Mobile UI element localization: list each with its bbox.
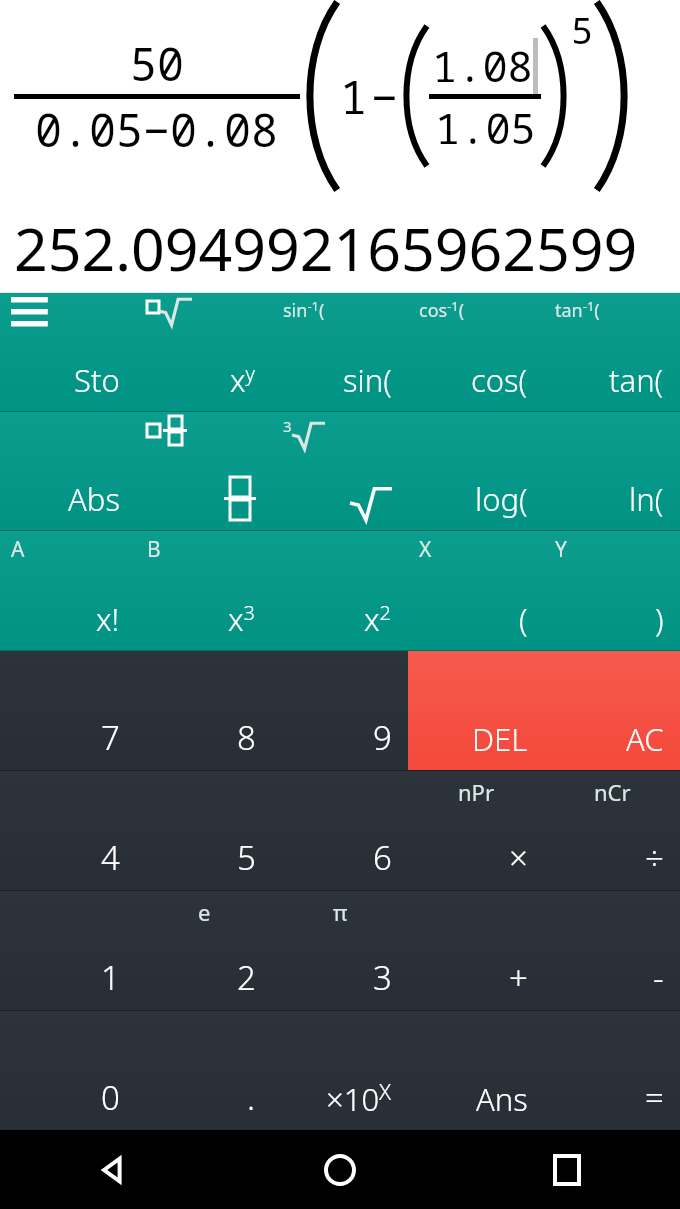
button[interactable]: Menu <box>0 293 136 411</box>
staticText: nPr <box>458 777 494 807</box>
button[interactable]: B <box>136 531 272 650</box>
staticText: A <box>11 535 25 564</box>
staticText: B <box>147 535 161 564</box>
button[interactable]: e <box>136 891 272 1010</box>
button[interactable]: cos-1( <box>408 293 544 411</box>
button[interactable]: 1 <box>0 891 136 1010</box>
staticText: X <box>419 535 432 564</box>
button[interactable]: Home <box>226 1130 453 1209</box>
button[interactable]: AC <box>544 651 680 770</box>
staticText: ln( <box>629 478 664 520</box>
button[interactable]: Ans <box>408 1011 544 1130</box>
staticText: ( <box>519 598 528 640</box>
staticText: 4 <box>101 835 120 880</box>
staticText: 1 <box>101 955 120 1000</box>
button[interactable]: π <box>272 891 408 1010</box>
button[interactable]: = <box>544 1011 680 1130</box>
staticText: 0 <box>101 1075 120 1120</box>
button[interactable]: A <box>0 531 136 650</box>
button[interactable]: X <box>408 531 544 650</box>
button[interactable]: ln( <box>544 412 680 530</box>
staticText: × <box>509 835 528 880</box>
staticText: Abs <box>68 478 120 520</box>
staticText: 7 <box>101 715 120 760</box>
staticText: 1.05 <box>435 99 536 156</box>
staticText: . <box>247 1075 256 1120</box>
button[interactable]: 7 <box>0 651 136 770</box>
button[interactable]: Square root <box>272 412 408 530</box>
staticText: 1.08 <box>432 37 533 94</box>
button[interactable]: . <box>136 1011 272 1130</box>
staticText: sin( <box>343 359 392 401</box>
button[interactable]: 5 <box>136 771 272 890</box>
button[interactable]: - <box>544 891 680 1010</box>
button[interactable]: tan-1( <box>544 293 680 411</box>
staticText: DEL <box>472 718 528 760</box>
staticText: Sto <box>74 359 120 401</box>
staticText: e <box>198 897 211 927</box>
staticText: cos( <box>471 359 528 401</box>
button[interactable]: 8 <box>136 651 272 770</box>
staticText: 6 <box>373 835 392 880</box>
staticText: 252.094992165962599 <box>14 208 638 288</box>
staticText: log( <box>475 478 528 520</box>
button[interactable]: log( <box>408 412 544 530</box>
button[interactable]: DEL <box>408 651 544 770</box>
staticText: 5 <box>571 4 594 54</box>
staticText: x! <box>96 598 120 640</box>
button[interactable]: 9 <box>272 651 408 770</box>
button[interactable]: 6 <box>272 771 408 890</box>
staticText: AC <box>626 718 664 760</box>
button[interactable]: Recents <box>453 1130 680 1209</box>
button[interactable]: 4 <box>0 771 136 890</box>
staticText: = <box>645 1075 664 1120</box>
button[interactable]: sin-1( <box>272 293 408 411</box>
staticText: 5 <box>237 835 256 880</box>
staticText: xy <box>230 359 256 401</box>
button[interactable]: Abs <box>0 412 136 530</box>
staticText: 0.05−0.08 <box>35 99 279 160</box>
staticText: 3 <box>283 416 292 436</box>
staticText: - <box>653 955 664 1000</box>
staticText: Ans <box>476 1078 528 1120</box>
staticText: 8 <box>237 715 256 760</box>
staticText: Y <box>555 535 567 564</box>
button[interactable]: ×10X <box>272 1011 408 1130</box>
button[interactable]: x to the power y <box>136 293 272 411</box>
button[interactable]: Y <box>544 531 680 650</box>
button[interactable]: 0 <box>0 1011 136 1130</box>
button[interactable]: Fraction <box>136 412 272 530</box>
staticText: sin-1( <box>283 297 325 322</box>
staticText: 3 <box>373 955 392 1000</box>
button[interactable]: nPr <box>408 771 544 890</box>
staticText: nCr <box>594 777 631 807</box>
staticText: ÷ <box>645 835 664 880</box>
button[interactable]: x2 <box>272 531 408 650</box>
staticText: tan( <box>609 359 664 401</box>
staticText: 2 <box>237 955 256 1000</box>
staticText: ×10X <box>326 1076 392 1120</box>
staticText: tan-1( <box>555 297 600 322</box>
staticText: + <box>509 955 528 1000</box>
staticText: 9 <box>373 715 392 760</box>
staticText: − <box>371 66 399 127</box>
button[interactable]: Back <box>0 1130 226 1209</box>
button[interactable]: nCr <box>544 771 680 890</box>
staticText: π <box>333 897 348 927</box>
staticText: x3 <box>228 598 256 640</box>
staticText: 1 <box>340 66 368 127</box>
staticText: cos-1( <box>419 297 465 322</box>
staticText: x2 <box>364 598 392 640</box>
staticText: 50 <box>130 33 185 94</box>
button[interactable]: + <box>408 891 544 1010</box>
staticText: ) <box>655 598 664 640</box>
